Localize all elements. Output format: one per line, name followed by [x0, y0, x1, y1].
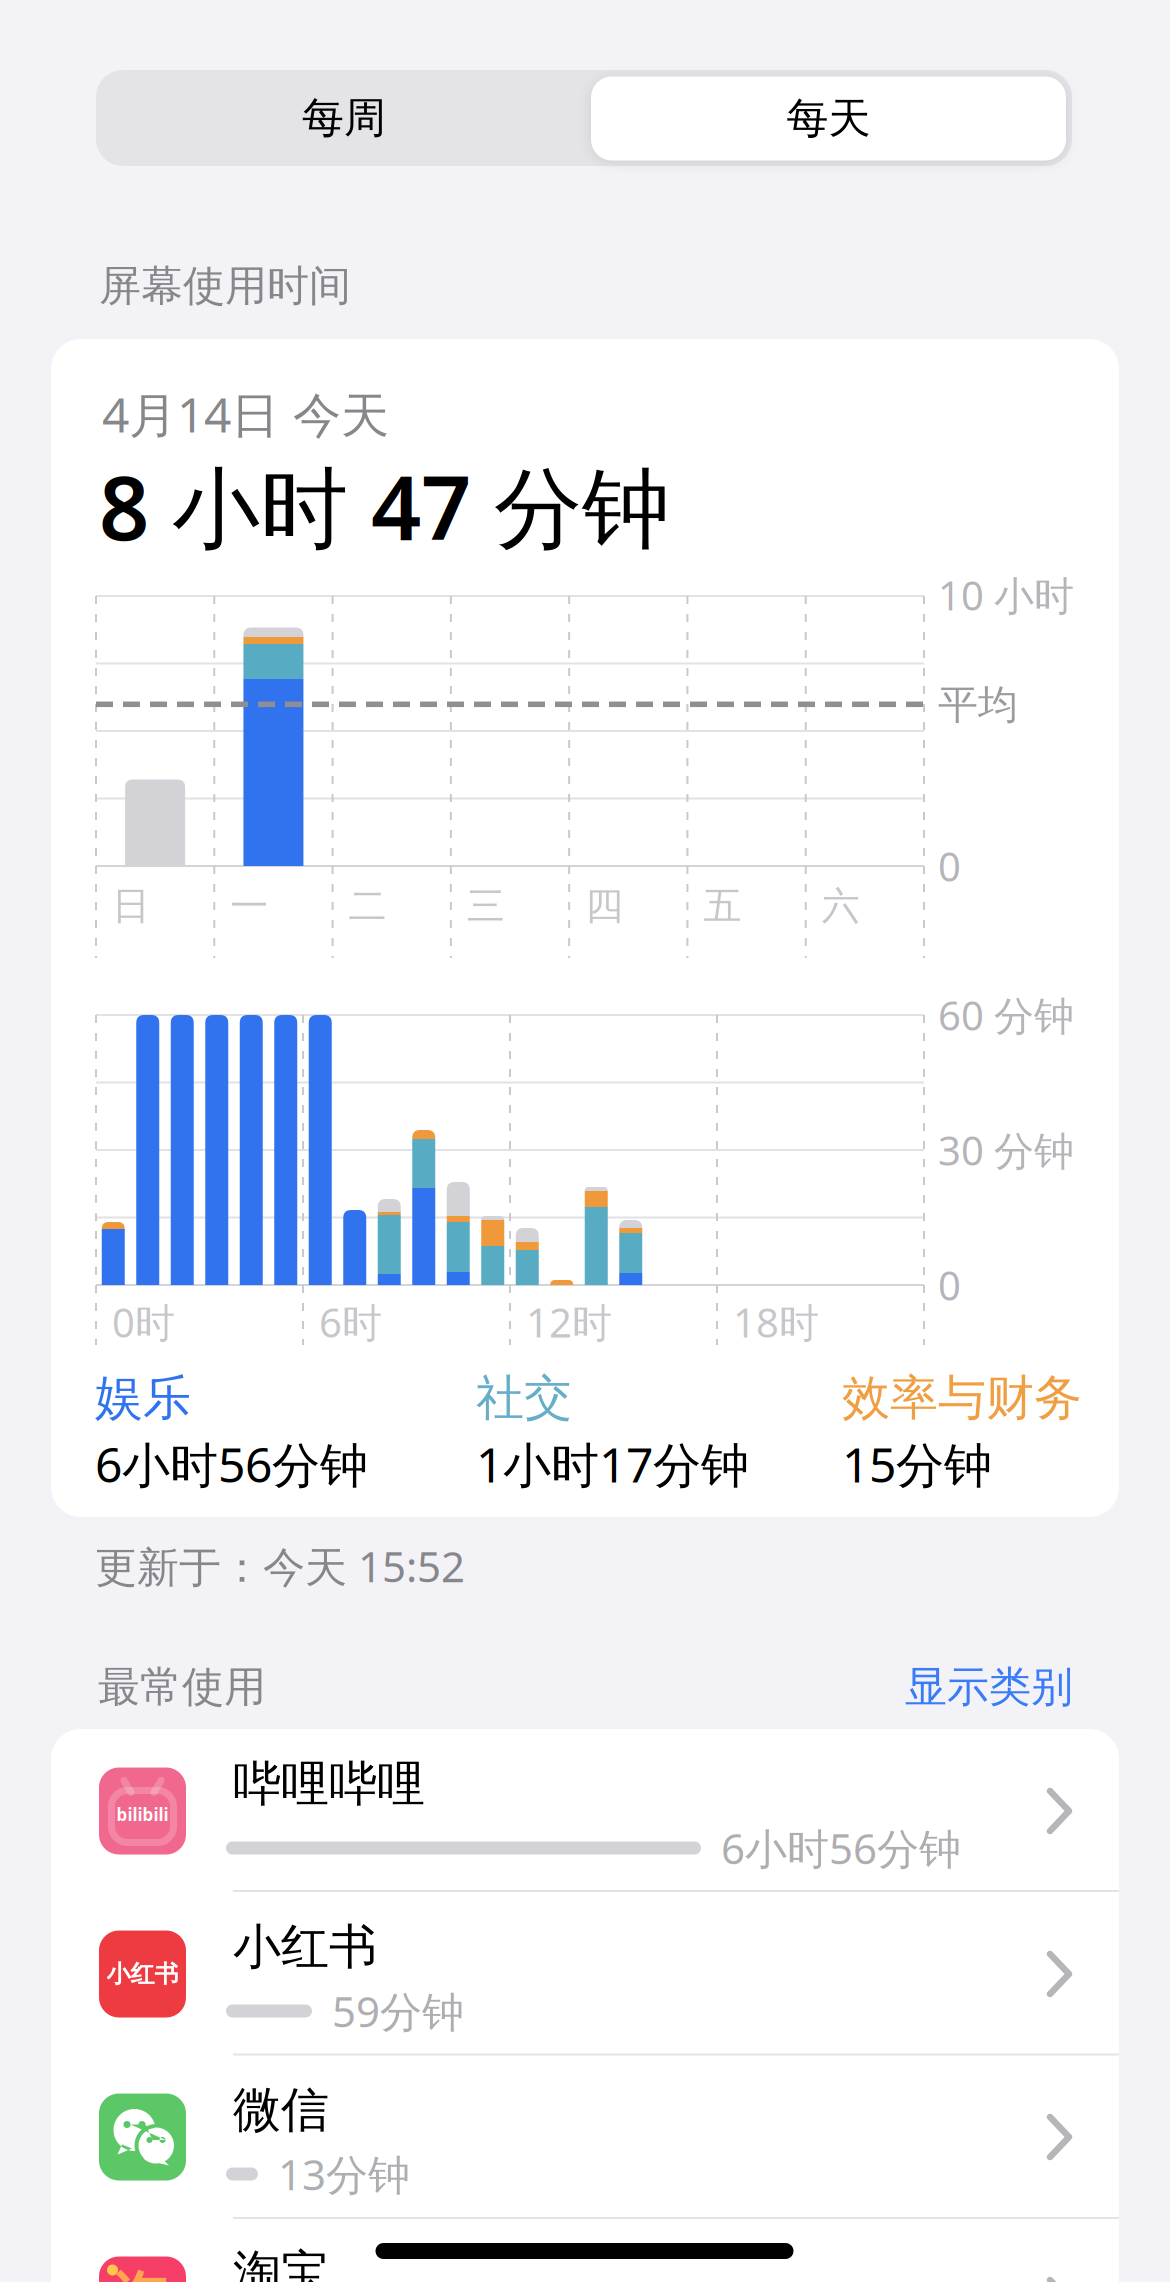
staticText: 59分钟 — [332, 1983, 464, 2039]
staticText: 效率与财务 — [842, 1368, 1082, 1427]
staticText: 一 — [230, 883, 268, 929]
staticText: 每周 — [302, 92, 386, 144]
staticText: 淘 — [112, 2264, 168, 2282]
staticText: 6小时56分钟 — [721, 1820, 961, 1876]
staticText: 8 小时 47 分钟 — [99, 448, 670, 564]
button[interactable]: 显示类别 — [0, 0, 1170, 2282]
button[interactable]: 微信 — [51, 2055, 1119, 2218]
staticText: 三 — [467, 883, 505, 929]
staticText: 小红书 — [233, 1917, 377, 1976]
staticText: 六 — [822, 883, 860, 929]
staticText: 娱乐 — [95, 1368, 191, 1427]
staticText: 60 分钟 — [938, 988, 1074, 1041]
staticText: 平均 — [938, 680, 1018, 729]
staticText: 微信 — [233, 2080, 329, 2139]
staticText: 更新于：今天 15:52 — [95, 1538, 465, 1594]
staticText: 1小时17分钟 — [476, 1432, 749, 1496]
staticText: 淘宝 — [233, 2243, 329, 2282]
staticText: 6时 — [319, 1295, 382, 1348]
staticText: 最常使用 — [98, 1661, 266, 1713]
button[interactable]: 小红书 — [51, 1892, 1119, 2055]
button[interactable]: 每天 — [0, 0, 1170, 2282]
staticText: 12时 — [526, 1295, 612, 1348]
staticText: bilibili — [116, 1803, 168, 1826]
staticText: 社交 — [476, 1368, 572, 1427]
button[interactable]: 每周 — [0, 0, 1170, 2282]
staticText: 每天 — [786, 93, 870, 144]
button[interactable]: 淘 — [51, 2218, 1119, 2282]
staticText: 日 — [112, 883, 150, 929]
staticText: 五 — [703, 883, 741, 929]
staticText: 6小时56分钟 — [95, 1432, 368, 1496]
staticText: 0 — [938, 839, 961, 892]
staticText: 4月14日 今天 — [102, 382, 389, 446]
staticText: 四 — [585, 883, 623, 929]
staticText: 30 分钟 — [938, 1123, 1074, 1176]
staticText: 屏幕使用时间 — [99, 260, 351, 312]
staticText: 15分钟 — [842, 1432, 992, 1496]
staticText: 10 小时 — [938, 568, 1074, 621]
button[interactable]: bilibili — [51, 1729, 1119, 1892]
staticText: 哔哩哔哩 — [233, 1754, 425, 1813]
staticText: 显示类别 — [905, 1661, 1073, 1713]
staticText: 0时 — [112, 1295, 175, 1348]
staticText: 小红书 — [106, 1959, 178, 1989]
staticText: 二 — [349, 883, 387, 929]
staticText: 18时 — [733, 1295, 819, 1348]
staticText: 0 — [938, 1258, 961, 1311]
staticText: 13分钟 — [278, 2146, 410, 2202]
